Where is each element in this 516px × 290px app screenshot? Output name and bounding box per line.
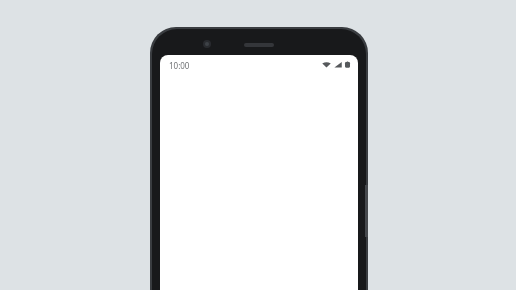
staticText: 10:00 <box>169 60 190 71</box>
